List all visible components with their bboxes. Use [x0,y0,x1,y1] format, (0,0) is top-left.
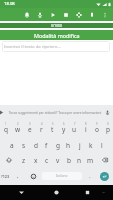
button[interactable]: c [41,152,52,168]
staticText: Inserisci il testo da ripetere... [4,44,61,50]
button[interactable]: . [83,168,96,184]
staticText: m [87,156,94,165]
staticText: s [22,141,26,150]
button[interactable]: Italiano [42,172,82,180]
button[interactable]: y [58,120,69,136]
staticText: , [17,172,19,180]
button[interactable]: Emoji [25,168,41,184]
staticText: 9 [96,122,98,126]
button[interactable]: Stop [59,8,72,21]
button[interactable]: g [52,136,63,152]
button[interactable]: d [30,136,41,152]
button[interactable]: Hide keyboard [96,185,110,199]
staticText: g [56,141,60,150]
staticText: h [66,141,71,150]
button[interactable]: w [12,120,24,136]
button[interactable]: Enter [96,168,113,184]
staticText: 3 [29,122,31,126]
staticText: y [62,125,66,134]
button[interactable]: x [30,152,41,168]
staticText: u [72,125,77,134]
button[interactable]: r [36,120,47,136]
button[interactable]: q [0,120,12,136]
button[interactable]: j [74,136,85,152]
staticText: q [4,125,8,134]
staticText: 1 [5,122,7,126]
button[interactable]: b [63,152,74,168]
staticText: Tocca suggerimenti per attivarli? Tocca … [8,111,102,115]
staticText: b [67,156,71,165]
button[interactable]: More options [98,8,111,21]
button[interactable]: Info [85,8,98,21]
button[interactable]: Backspace [96,152,113,168]
staticText: i [85,125,87,134]
staticText: 18.08 [4,1,15,7]
button[interactable]: k [85,136,96,152]
button[interactable]: , [11,168,25,184]
button[interactable]: Microphone [33,8,46,21]
staticText: n [77,156,82,165]
button[interactable]: f [41,136,52,152]
button[interactable]: Inserisci il testo da ripetere... [2,41,110,52]
staticText: a [10,141,14,150]
button[interactable]: Expand toolbar [0,105,8,120]
staticText: x [34,156,38,165]
button[interactable]: Recents [80,185,94,199]
button[interactable]: Apps [72,8,85,21]
button[interactable]: m [85,152,96,168]
button[interactable]: u [69,120,80,136]
button[interactable]: Alarm [20,8,33,21]
staticText: 5 [52,122,54,126]
staticText: 0/1000 [51,23,62,28]
staticText: w [15,125,21,134]
staticText: Italiano [56,174,68,178]
staticText: Modalità modifica [34,32,80,39]
staticText: z [22,156,26,165]
button[interactable]: l [96,136,107,152]
staticText: o [95,125,99,134]
button[interactable]: v [52,152,63,168]
staticText: 6 [63,122,65,126]
staticText: ?123 [1,174,10,179]
staticText: e [28,125,32,134]
staticText: 2 [17,122,19,126]
button[interactable]: p [102,120,113,136]
staticText: d [34,141,38,150]
button[interactable]: o [91,120,102,136]
staticText: l [101,141,103,150]
staticText: t [51,125,54,134]
button[interactable]: z [18,152,30,168]
button[interactable]: n [74,152,85,168]
button[interactable]: Voice input [102,105,113,120]
staticText: 7 [74,122,76,126]
button[interactable]: t [47,120,58,136]
staticText: 0 [107,122,109,126]
button[interactable]: Home [49,185,63,199]
button[interactable]: s [18,136,30,152]
button[interactable]: e [24,120,36,136]
button[interactable]: i [80,120,91,136]
button[interactable]: ?123 [0,168,11,184]
staticText: c [45,156,49,165]
button[interactable]: Play [46,8,59,21]
staticText: 8 [85,122,87,126]
staticText: v [56,156,60,165]
button[interactable]: a [6,136,18,152]
staticText: j [79,141,81,150]
staticText: f [45,141,48,150]
staticText: k [89,141,93,150]
staticText: . [89,172,91,180]
button[interactable]: h [63,136,74,152]
staticText: r [40,125,43,134]
staticText: p [106,125,110,134]
button[interactable]: Back [14,185,28,199]
button[interactable]: Shift [0,152,18,168]
staticText: 4 [41,122,43,126]
